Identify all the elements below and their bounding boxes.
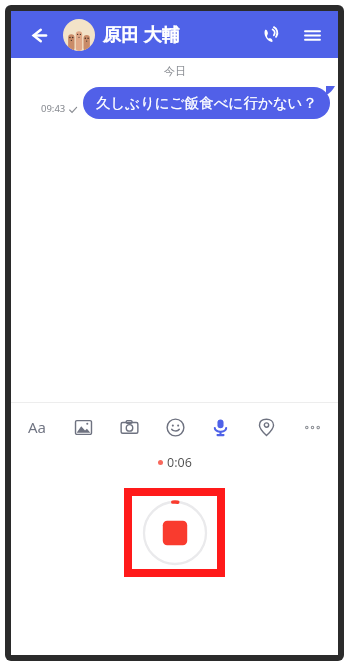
button[interactable]: More <box>296 411 328 443</box>
button[interactable]: Call <box>253 18 287 52</box>
staticText: 09:43 <box>41 102 66 115</box>
button[interactable]: Voice message <box>204 411 236 443</box>
button[interactable]: Text format <box>21 411 53 443</box>
staticText: Aa <box>28 417 47 437</box>
button[interactable]: Photo <box>67 411 99 443</box>
staticText: 0:06 <box>167 454 192 471</box>
button[interactable]: Location <box>250 411 282 443</box>
button[interactable]: Menu <box>295 18 329 52</box>
button[interactable]: Profile photo <box>63 19 95 51</box>
staticText: 今日 <box>164 64 186 78</box>
staticText: 久しぶりにご飯食べに行かない？ <box>96 94 317 112</box>
button[interactable]: Camera <box>113 411 145 443</box>
button[interactable]: 久しぶりにご飯食べに行かない？ <box>83 87 330 119</box>
button[interactable]: Sticker <box>159 411 191 443</box>
button[interactable]: Stop recording <box>142 500 208 566</box>
button[interactable]: Back <box>21 18 55 52</box>
staticText: 原田 大輔 <box>103 22 180 47</box>
